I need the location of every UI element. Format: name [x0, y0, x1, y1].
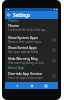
staticText: Theme [8, 19, 19, 23]
staticText: Sort apps alphabetically [8, 50, 39, 54]
staticText: Settings [13, 12, 31, 18]
button[interactable]: Back [5, 11, 13, 19]
button[interactable]: Theme [5, 23, 58, 32]
staticText: Show or hide system apps [8, 40, 41, 44]
button[interactable]: Override App Version [5, 71, 58, 80]
staticText: Override App Version [8, 71, 42, 76]
staticText: Hide Warning Msg [8, 56, 38, 61]
staticText: Show Sorted Apps [8, 45, 37, 50]
button[interactable]: Show System Apps [5, 35, 58, 44]
staticText: Theme [8, 23, 19, 28]
staticText: Show System Apps [8, 35, 38, 40]
staticText: Customize the look of the app [8, 28, 46, 32]
staticText: Force set app version name [8, 76, 43, 80]
button[interactable]: Hide Warning Msg [5, 56, 58, 65]
button[interactable]: Recent apps [43, 83, 49, 89]
button[interactable]: Home [29, 83, 35, 89]
staticText: Hide warning dialog on click [8, 61, 44, 65]
button[interactable]: Back [14, 83, 20, 89]
button[interactable]: Show Sorted Apps [5, 45, 58, 54]
staticText: About App [8, 66, 25, 70]
